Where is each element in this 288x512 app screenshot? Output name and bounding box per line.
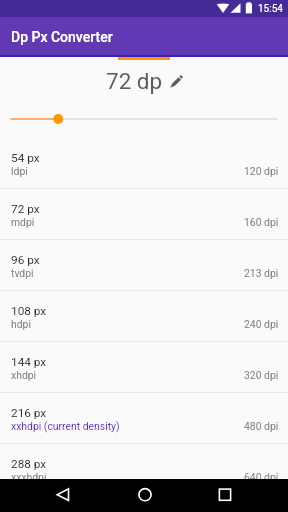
staticText: 144 px bbox=[11, 355, 47, 369]
staticText: 480 dpi bbox=[244, 420, 279, 432]
button[interactable]: Back bbox=[0, 479, 96, 512]
button[interactable]: Recent apps bbox=[192, 479, 288, 512]
other: Edit value bbox=[170, 75, 183, 88]
button[interactable]: 72 px bbox=[0, 189, 288, 240]
button[interactable]: 108 px bbox=[0, 291, 288, 342]
staticText: 72 px bbox=[11, 202, 40, 216]
staticText: 213 dpi bbox=[244, 267, 279, 279]
staticText: 15:54 bbox=[258, 3, 283, 15]
staticText: 72 dp bbox=[106, 68, 163, 94]
staticText: 54 px bbox=[11, 151, 40, 165]
button[interactable]: Home bbox=[96, 479, 192, 512]
button[interactable]: 216 px bbox=[0, 393, 288, 444]
staticText: Dp Px Converter bbox=[11, 29, 113, 45]
button[interactable]: 144 px bbox=[0, 342, 288, 393]
staticText: 160 dpi bbox=[244, 216, 279, 228]
button[interactable]: 288 px bbox=[0, 444, 288, 495]
staticText: xhdpi bbox=[11, 369, 37, 381]
staticText: 320 dpi bbox=[244, 369, 279, 381]
button[interactable]: 54 px bbox=[0, 138, 288, 189]
staticText: xxhdpi (current density) bbox=[11, 420, 120, 432]
staticText: 108 px bbox=[11, 304, 47, 318]
button[interactable] bbox=[0, 111, 288, 127]
staticText: hdpi bbox=[11, 318, 31, 330]
staticText: 240 dpi bbox=[244, 318, 279, 330]
staticText: 96 px bbox=[11, 253, 40, 267]
staticText: tvdpi bbox=[11, 267, 34, 279]
button[interactable]: 72 dp bbox=[0, 68, 288, 94]
staticText: xxxhdpi bbox=[11, 471, 47, 483]
staticText: mdpi bbox=[11, 216, 35, 228]
staticText: 216 px bbox=[11, 406, 47, 420]
staticText: 640 dpi bbox=[244, 471, 279, 483]
staticText: ldpi bbox=[11, 165, 28, 177]
staticText: 120 dpi bbox=[244, 165, 279, 177]
button[interactable]: 96 px bbox=[0, 240, 288, 291]
staticText: 288 px bbox=[11, 457, 47, 471]
